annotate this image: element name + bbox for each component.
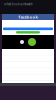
staticText: facebook [18,14,37,20]
staticText: m.facebook.com/watch [4,2,33,6]
